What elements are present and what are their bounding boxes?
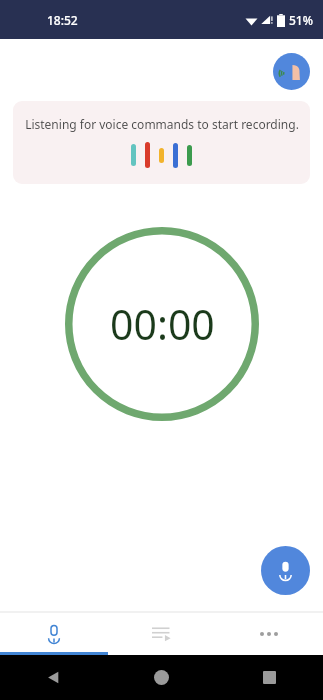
button[interactable]: Listening for voice commands to start re… [13,101,310,184]
staticText: 00:00 [110,296,215,352]
staticText: 18:52 [47,12,78,28]
staticText: Listening for voice commands to start re… [25,116,299,132]
button[interactable]: Record tab [0,612,107,655]
button[interactable]: Record [261,546,310,595]
staticText: 51% [289,12,313,28]
button[interactable]: Account [273,53,310,90]
button[interactable]: Recordings list [107,612,215,655]
button[interactable]: More options [215,612,323,655]
